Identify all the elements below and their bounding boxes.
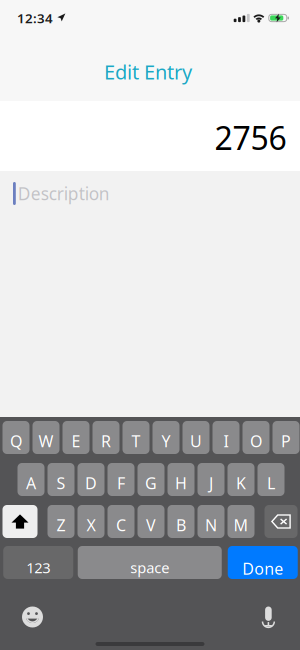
staticText: W xyxy=(38,430,53,452)
staticText: K xyxy=(236,472,246,494)
button[interactable]: Delete xyxy=(264,505,297,538)
staticText: J xyxy=(209,472,213,494)
button[interactable]: Edit Entry xyxy=(94,54,202,89)
staticText: Description xyxy=(18,182,110,205)
button[interactable]: F xyxy=(107,463,134,496)
button[interactable]: 123 xyxy=(3,546,73,579)
button[interactable]: H xyxy=(167,463,194,496)
button[interactable]: C xyxy=(107,505,134,538)
button[interactable]: U xyxy=(182,421,209,454)
staticText: T xyxy=(131,430,140,452)
button[interactable]: P xyxy=(272,421,299,454)
staticText: E xyxy=(71,430,80,452)
staticText: C xyxy=(116,514,126,536)
staticText: H xyxy=(175,472,187,494)
staticText: N xyxy=(205,514,217,536)
staticText: 123 xyxy=(26,558,50,577)
button[interactable]: R xyxy=(92,421,119,454)
button[interactable]: D xyxy=(77,463,104,496)
staticText: P xyxy=(281,430,291,452)
button[interactable]: space xyxy=(78,546,222,579)
staticText: G xyxy=(145,472,157,494)
button[interactable]: J xyxy=(197,463,224,496)
button[interactable]: I xyxy=(212,421,239,454)
button[interactable]: Q xyxy=(2,421,29,454)
staticText: U xyxy=(190,430,202,452)
button[interactable]: Dictation xyxy=(246,600,290,634)
button[interactable]: X xyxy=(77,505,104,538)
button[interactable]: L xyxy=(257,463,284,496)
button[interactable]: V xyxy=(137,505,164,538)
staticText: A xyxy=(26,472,36,494)
staticText: M xyxy=(233,514,248,536)
staticText: I xyxy=(223,430,228,452)
staticText: X xyxy=(86,514,95,536)
staticText: space xyxy=(130,558,169,577)
staticText: D xyxy=(85,472,97,494)
staticText: L xyxy=(267,472,275,494)
staticText: Done xyxy=(242,558,283,579)
button[interactable]: N xyxy=(197,505,224,538)
button[interactable]: S xyxy=(47,463,74,496)
staticText: Z xyxy=(56,514,65,536)
staticText: Edit Entry xyxy=(104,58,192,85)
button[interactable]: G xyxy=(137,463,164,496)
button[interactable]: Y xyxy=(152,421,179,454)
button[interactable]: M xyxy=(227,505,254,538)
button[interactable]: O xyxy=(242,421,269,454)
button[interactable]: Done xyxy=(228,546,298,579)
button[interactable]: B xyxy=(167,505,194,538)
button[interactable]: E xyxy=(62,421,89,454)
staticText: V xyxy=(146,514,156,536)
button[interactable]: Emoji xyxy=(10,600,54,634)
staticText: Y xyxy=(161,430,170,452)
button[interactable]: Z xyxy=(47,505,74,538)
staticText: R xyxy=(101,430,111,452)
staticText: O xyxy=(250,430,262,452)
button[interactable]: K xyxy=(227,463,254,496)
staticText: S xyxy=(56,472,65,494)
staticText: 2756 xyxy=(214,116,286,159)
button[interactable]: W xyxy=(32,421,59,454)
button[interactable]: Shift xyxy=(2,505,37,538)
staticText: Q xyxy=(10,430,22,452)
button[interactable]: A xyxy=(17,463,44,496)
staticText: B xyxy=(176,514,186,536)
staticText: 12:34 xyxy=(17,9,53,27)
button[interactable]: T xyxy=(122,421,149,454)
staticText: F xyxy=(117,472,125,494)
